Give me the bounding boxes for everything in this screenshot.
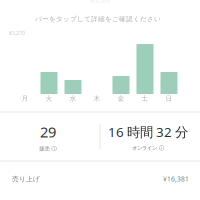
staticText: 売り上げ xyxy=(12,175,40,183)
button[interactable]: 16 時間 32 分 xyxy=(99,115,197,159)
staticText: 火 xyxy=(45,94,52,103)
staticText: 月 xyxy=(21,94,28,103)
staticText: バーをタップして詳細をご確認ください xyxy=(35,15,161,23)
staticText: 金 xyxy=(117,94,124,103)
button[interactable]: 売り上げ xyxy=(0,164,200,194)
staticText: 日 xyxy=(165,94,172,103)
staticText: 木 xyxy=(93,94,100,103)
staticText: 16 時間 32 分 xyxy=(108,123,188,141)
staticText: 土 xyxy=(141,94,148,103)
staticText: 29 xyxy=(40,122,56,141)
staticText: ¥3,270 xyxy=(9,29,25,37)
staticText: 水 xyxy=(69,94,76,103)
staticText: ¥16,381 xyxy=(163,175,189,183)
button[interactable]: 29 xyxy=(0,115,97,159)
staticText: 販売 ⓘ xyxy=(39,145,56,152)
staticText: オンライン ⓘ xyxy=(132,145,164,151)
staticText: 売り上げ xyxy=(90,0,110,4)
